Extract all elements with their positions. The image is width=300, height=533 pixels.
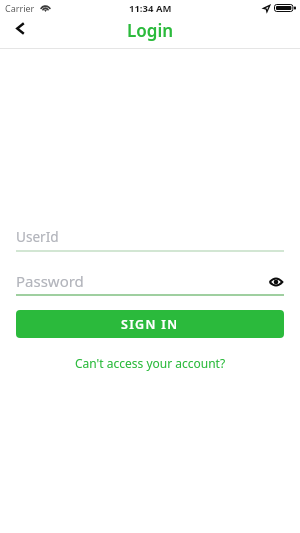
staticText: Carrier bbox=[5, 2, 35, 14]
staticText: Login bbox=[127, 19, 174, 42]
staticText: Password bbox=[16, 271, 84, 291]
staticText: SIGN IN bbox=[121, 316, 179, 333]
button[interactable]: SIGN IN bbox=[16, 310, 284, 338]
staticText: UserId bbox=[16, 227, 59, 246]
button[interactable]: UserId bbox=[16, 230, 284, 252]
button[interactable]: Back bbox=[4, 13, 36, 43]
staticText: 11:34 AM bbox=[129, 2, 172, 15]
button[interactable]: Show password bbox=[265, 271, 287, 293]
button[interactable]: Password bbox=[16, 274, 284, 296]
button[interactable]: Can't access your account? bbox=[69, 352, 232, 374]
